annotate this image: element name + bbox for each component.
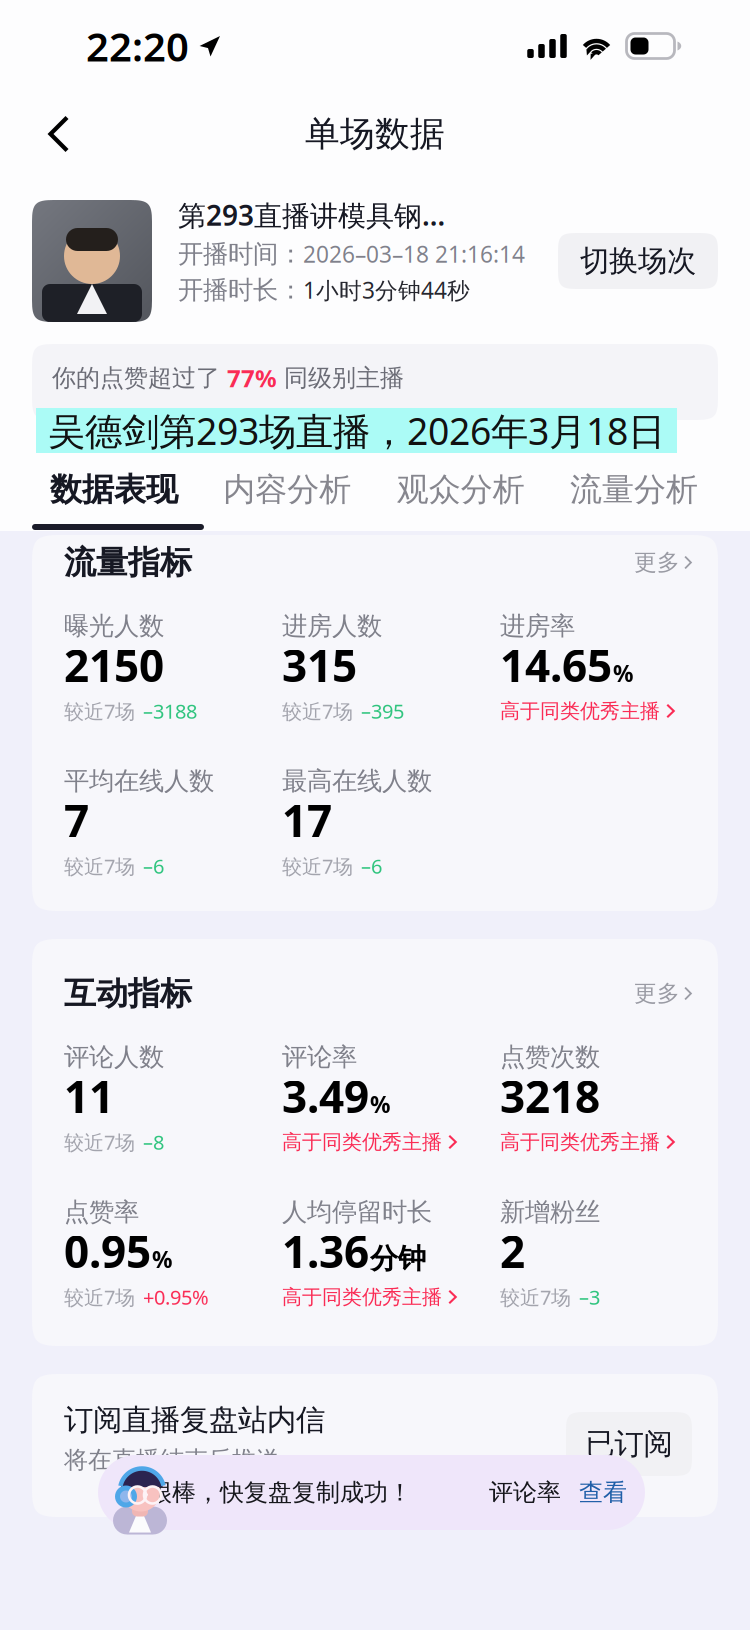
staticText: 切换场次: [580, 243, 696, 279]
staticText: 流量指标: [64, 543, 192, 582]
staticText: 77%: [227, 362, 277, 394]
staticText: 更多: [634, 549, 680, 576]
staticText: 高于同类优秀主播: [282, 1285, 442, 1309]
staticText: 人均停留时长: [282, 1196, 432, 1227]
staticText: 点赞次数: [500, 1041, 600, 1072]
staticText: 数据表现: [50, 470, 178, 509]
staticText: 点赞率: [64, 1196, 139, 1227]
staticText: 已订阅: [585, 1426, 672, 1462]
staticText: 分钟: [370, 1242, 426, 1276]
staticText: 流量分析: [570, 470, 698, 509]
staticText: 评论率: [489, 1478, 561, 1507]
staticText: –6: [361, 853, 382, 879]
staticText: 2150: [64, 636, 164, 694]
staticText: 你的点赞超过了: [52, 363, 227, 393]
button[interactable]: 切换场次: [558, 233, 718, 289]
staticText: –8: [143, 1129, 164, 1155]
staticText: 将在直播结束后推送: [64, 1445, 280, 1475]
staticText: 评论人数: [64, 1041, 164, 1072]
button[interactable]: 更多: [634, 975, 692, 1011]
staticText: 0.95: [64, 1222, 151, 1280]
button[interactable]: 返回: [22, 99, 96, 169]
staticText: 14.65: [500, 636, 612, 694]
staticText: 同级别主播: [277, 363, 404, 393]
staticText: 高于同类优秀主播: [500, 699, 660, 723]
staticText: 评论率: [282, 1041, 357, 1072]
staticText: 较近7场: [64, 1129, 135, 1155]
staticText: 2: [500, 1222, 525, 1280]
staticText: 最高在线人数: [282, 765, 432, 796]
staticText: 第293直播讲模具钢…: [178, 196, 445, 234]
staticText: 高于同类优秀主播: [282, 1130, 442, 1154]
button[interactable]: 观众分析: [397, 470, 525, 509]
staticText: 新增粉丝: [500, 1196, 600, 1227]
staticText: 较近7场: [282, 853, 353, 879]
button[interactable]: 更多: [634, 544, 692, 580]
staticText: 22:20: [86, 19, 189, 72]
staticText: 较近7场: [500, 1284, 571, 1310]
staticText: 观众分析: [397, 470, 525, 509]
staticText: 进房人数: [282, 610, 382, 641]
staticText: –6: [143, 853, 164, 879]
staticText: 互动指标: [64, 974, 192, 1013]
staticText: %: [152, 1244, 172, 1274]
staticText: 单场数据: [305, 113, 445, 155]
button[interactable]: 内容分析: [223, 470, 351, 509]
staticText: %: [613, 658, 633, 688]
staticText: 平均在线人数: [64, 765, 214, 796]
staticText: 更多: [634, 980, 680, 1007]
staticText: 315: [282, 636, 357, 694]
staticText: +0.95%: [143, 1284, 209, 1310]
staticText: 3218: [500, 1067, 600, 1125]
staticText: 很棒，快复盘复制成功！: [148, 1478, 412, 1507]
staticText: 查看: [579, 1478, 627, 1507]
staticText: 曝光人数: [64, 610, 164, 641]
staticText: 1.36: [282, 1222, 369, 1280]
staticText: 17: [282, 791, 332, 849]
staticText: 吴德剑第293场直播，2026年3月18日: [48, 406, 665, 455]
button[interactable]: 数据表现: [50, 470, 178, 509]
staticText: –395: [361, 698, 404, 724]
button[interactable]: 很棒，快复盘复制成功！: [98, 1455, 645, 1530]
staticText: 开播时间：: [178, 238, 303, 269]
staticText: 订阅直播复盘站内信: [64, 1402, 325, 1438]
staticText: 7: [64, 791, 89, 849]
staticText: 较近7场: [282, 698, 353, 724]
staticText: 高于同类优秀主播: [500, 1130, 660, 1154]
staticText: 进房率: [500, 610, 575, 641]
staticText: –3: [579, 1284, 600, 1310]
staticText: 开播时长：: [178, 274, 303, 305]
staticText: 11: [64, 1067, 114, 1125]
button[interactable]: 已订阅: [566, 1412, 692, 1476]
button[interactable]: 流量分析: [570, 470, 698, 509]
staticText: –3188: [143, 698, 197, 724]
staticText: %: [370, 1089, 390, 1119]
staticText: 较近7场: [64, 853, 135, 879]
staticText: 较近7场: [64, 698, 135, 724]
staticText: 3.49: [282, 1067, 369, 1125]
staticText: 内容分析: [223, 470, 351, 509]
staticText: 1小时3分钟44秒: [303, 275, 470, 305]
staticText: 2026–03–18 21:16:14: [303, 239, 525, 269]
staticText: 较近7场: [64, 1284, 135, 1310]
